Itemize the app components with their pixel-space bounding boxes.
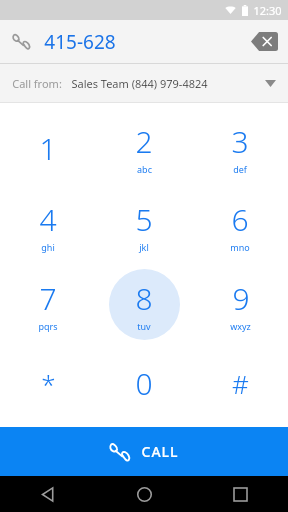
staticText: 415-628 bbox=[44, 29, 116, 55]
staticText: Call from: bbox=[12, 76, 62, 91]
staticText: Sales Team (844) 979-4824 bbox=[71, 76, 208, 91]
button[interactable]: CALL bbox=[0, 427, 288, 476]
button[interactable]: 8 bbox=[96, 265, 192, 344]
button[interactable]: 3 bbox=[192, 109, 288, 187]
button[interactable]: Home bbox=[96, 476, 192, 512]
button[interactable]: 0 bbox=[96, 344, 192, 423]
staticText: 2 bbox=[135, 121, 153, 162]
staticText: 9 bbox=[232, 278, 250, 319]
staticText: jkl bbox=[139, 241, 149, 253]
button[interactable]: 9 bbox=[192, 265, 288, 344]
button[interactable]: Recents bbox=[192, 476, 288, 512]
staticText: # bbox=[232, 366, 249, 401]
staticText: 1 bbox=[39, 128, 57, 169]
button[interactable]: # bbox=[192, 344, 288, 423]
staticText: ghi bbox=[41, 241, 55, 253]
staticText: 0 bbox=[135, 363, 153, 404]
staticText: 12:30 bbox=[253, 3, 282, 18]
staticText: CALL bbox=[141, 442, 179, 461]
staticText: tuv bbox=[137, 320, 151, 332]
staticText: * bbox=[41, 366, 56, 401]
staticText: abc bbox=[137, 163, 152, 175]
staticText: 6 bbox=[231, 199, 249, 240]
staticText: 4 bbox=[39, 199, 57, 240]
staticText: mno bbox=[230, 241, 250, 253]
staticText: wxyz bbox=[230, 320, 251, 332]
button[interactable]: 2 bbox=[96, 109, 192, 187]
staticText: 5 bbox=[135, 199, 153, 240]
staticText: def bbox=[233, 163, 247, 175]
button[interactable]: Clear bbox=[251, 32, 278, 51]
button[interactable]: Call from: bbox=[0, 64, 288, 102]
button[interactable]: Back bbox=[0, 476, 96, 512]
button[interactable]: 4 bbox=[0, 187, 96, 265]
staticText: 7 bbox=[39, 278, 57, 319]
staticText: pqrs bbox=[38, 320, 58, 332]
staticText: 3 bbox=[231, 121, 249, 162]
button[interactable]: 7 bbox=[0, 265, 96, 344]
button[interactable]: * bbox=[0, 344, 96, 423]
button[interactable]: 5 bbox=[96, 187, 192, 265]
staticText: 8 bbox=[135, 278, 153, 319]
button[interactable]: 1 bbox=[0, 109, 96, 187]
button[interactable]: 6 bbox=[192, 187, 288, 265]
